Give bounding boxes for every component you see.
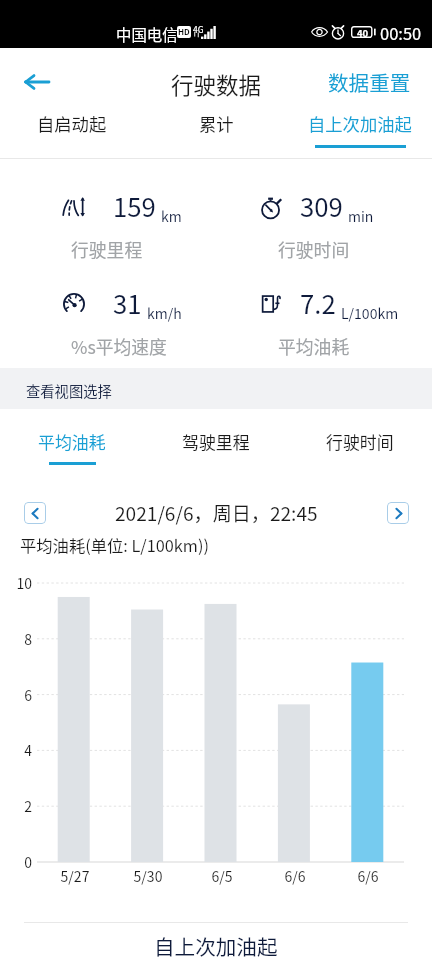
staticText: km (161, 206, 182, 226)
staticText: 4G (193, 23, 204, 35)
staticText: 5/30 (118, 866, 178, 886)
staticText: %s平均速度 (71, 333, 167, 359)
staticText: 2 (6, 796, 32, 816)
button[interactable]: 行驶时间 (288, 426, 432, 478)
staticText: 行驶时间 (326, 429, 394, 453)
staticText: 309 (300, 187, 343, 224)
staticText: L/100km (341, 303, 399, 323)
button[interactable]: 自启动起 (0, 108, 144, 158)
staticText: 4 (6, 740, 32, 760)
button[interactable]: 自上次加油起 (288, 108, 432, 158)
staticText: 159 (113, 187, 156, 224)
staticText: 数据重置 (328, 67, 411, 97)
button[interactable]: Back (12, 58, 60, 106)
staticText: 行驶数据 (171, 68, 262, 101)
staticText: 40 (357, 26, 369, 38)
staticText: km/h (147, 303, 182, 323)
button[interactable]: 驾驶里程 (144, 426, 288, 478)
staticText: 行驶时间 (278, 236, 350, 262)
button[interactable]: 累计 (144, 108, 288, 158)
staticText: 自上次加油起 (154, 931, 278, 960)
staticText: 平均油耗 (38, 429, 106, 453)
staticText: 8 (6, 629, 32, 649)
staticText: 0 (6, 852, 32, 872)
staticText: 查看视图选择 (26, 380, 112, 401)
staticText: min (348, 206, 374, 226)
staticText: 自上次加油起 (308, 111, 412, 136)
staticText: 6/6 (338, 866, 398, 886)
staticText: 00:50 (380, 21, 422, 45)
staticText: 6/5 (192, 866, 252, 886)
staticText: 31 (113, 284, 142, 321)
button[interactable]: 数据重置 (328, 67, 411, 97)
staticText: 累计 (199, 111, 234, 136)
staticText: 平均油耗 (278, 333, 350, 359)
staticText: 6/6 (265, 866, 325, 886)
staticText: 6 (6, 685, 32, 705)
staticText: 行驶里程 (71, 236, 143, 262)
button[interactable]: 平均油耗 (0, 426, 144, 478)
staticText: 10 (6, 573, 32, 593)
staticText: 7.2 (300, 284, 336, 321)
button[interactable]: Previous date (24, 502, 46, 524)
staticText: 5/27 (45, 866, 105, 886)
staticText: 自启动起 (37, 111, 107, 136)
staticText: 驾驶里程 (182, 429, 250, 453)
staticText: 2021/6/6，周日，22:45 (115, 499, 318, 527)
staticText: HD (178, 26, 190, 38)
staticText: 中国电信 (116, 23, 178, 45)
staticText: 平均油耗(单位: L/100km)) (20, 533, 209, 557)
button[interactable]: 自上次加油起 (0, 930, 432, 960)
button[interactable]: Next date (387, 502, 409, 524)
